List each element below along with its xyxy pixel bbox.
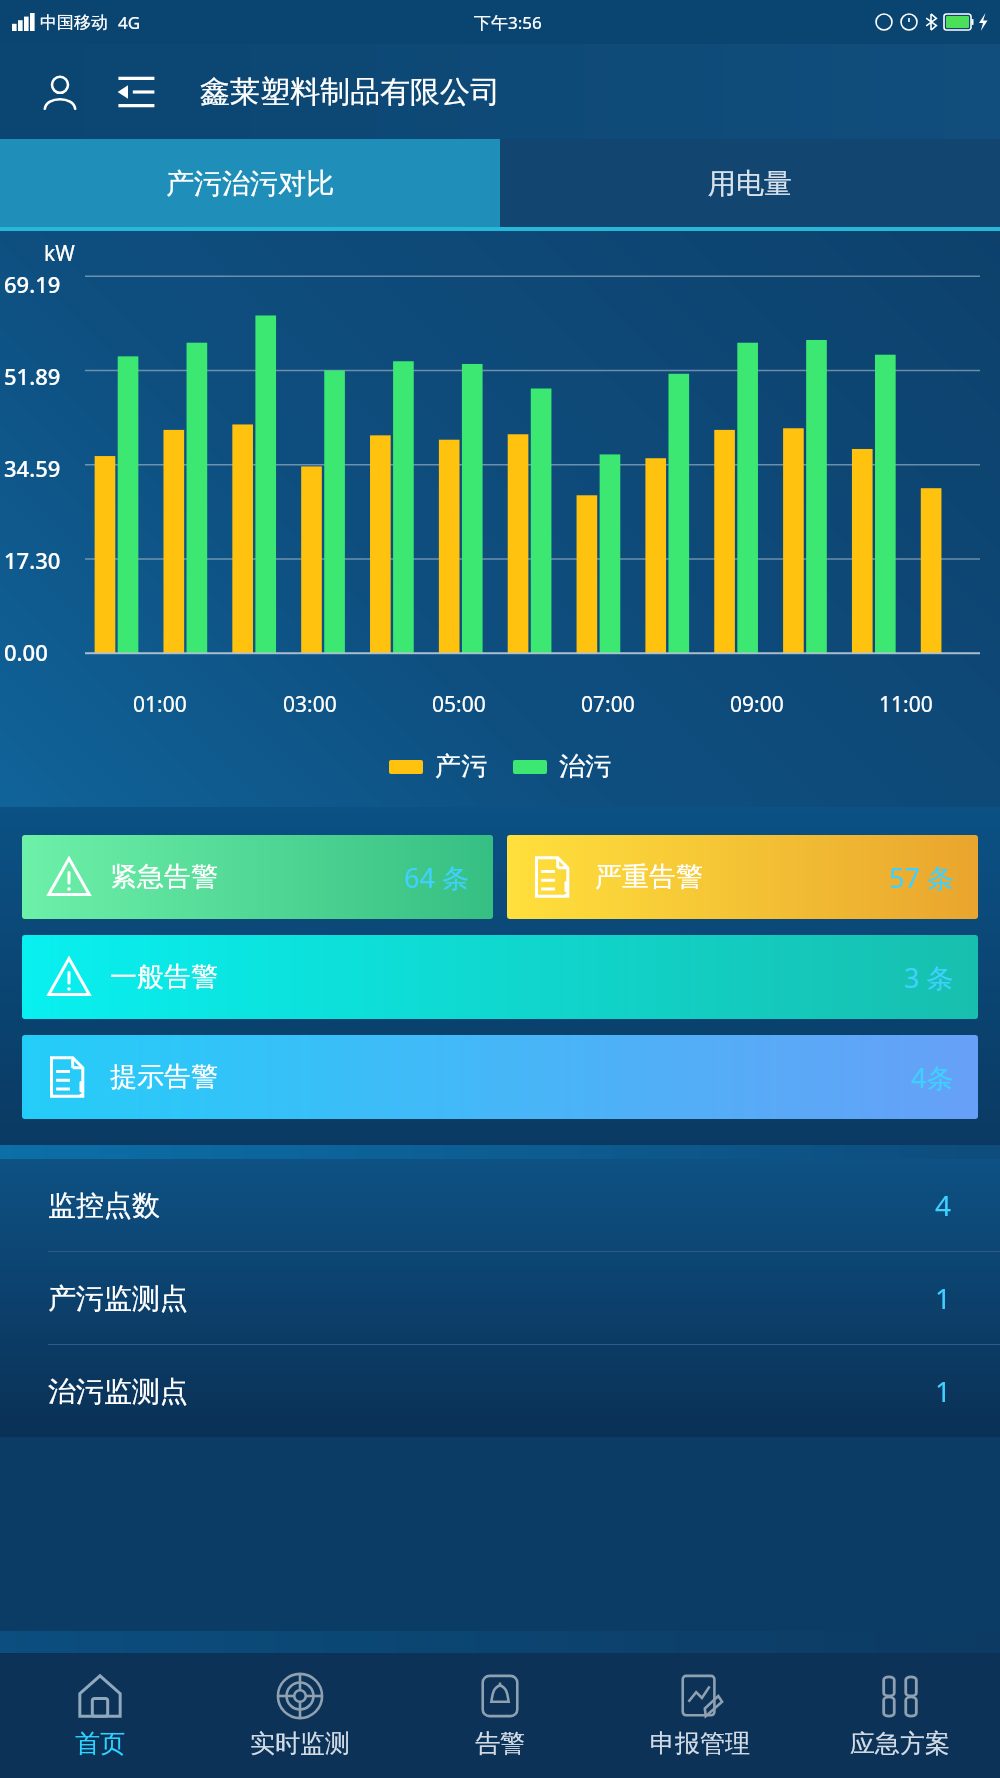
button[interactable]: 一般告警 [22,935,978,1019]
staticText: 64 条 [404,859,469,896]
staticText: 4条 [911,1059,954,1096]
staticText: 鑫莱塑料制品有限公司 [200,73,500,111]
button[interactable]: 治污监测点 [0,1345,1000,1437]
staticText: 17.30 [4,545,61,575]
button[interactable]: 提示告警 [22,1035,978,1119]
button[interactable]: 首页 [0,1653,200,1778]
button[interactable]: Menu [112,68,160,116]
staticText: 一般告警 [110,960,218,994]
button[interactable]: 告警 [400,1653,600,1778]
staticText: 提示告警 [110,1060,218,1094]
staticText: 34.59 [4,453,61,483]
button[interactable]: 实时监测 [200,1653,400,1778]
staticText: 03:00 [283,690,337,719]
staticText: 11:00 [879,690,933,719]
staticText: 中国移动 [40,12,108,33]
button[interactable]: Profile [36,68,84,116]
staticText: 应急方案 [850,1728,950,1759]
staticText: 实时监测 [250,1728,350,1759]
button[interactable]: 产污监测点 [0,1252,1000,1344]
staticText: 57 条 [889,859,954,896]
staticText: 监控点数 [48,1188,160,1223]
staticText: 用电量 [708,166,792,201]
staticText: 下午3:56 [474,11,542,34]
staticText: 告警 [475,1728,525,1759]
button[interactable]: 应急方案 [800,1653,1000,1778]
staticText: kW [44,239,75,268]
staticText: 09:00 [730,690,784,719]
staticText: 首页 [75,1728,125,1759]
staticText: 治污 [559,750,611,783]
staticText: 05:00 [432,690,486,719]
button[interactable]: 产污治污对比 [0,139,500,227]
staticText: 1 [935,1372,952,1410]
staticText: 69.19 [4,269,61,299]
staticText: 51.89 [4,361,61,391]
staticText: 产污 [435,750,487,783]
button[interactable]: 监控点数 [0,1159,1000,1251]
button[interactable]: 用电量 [500,139,1000,227]
staticText: 申报管理 [650,1728,750,1759]
staticText: 4 [935,1186,952,1224]
button[interactable]: 严重告警 [507,835,978,919]
staticText: 4G [118,11,141,34]
staticText: 01:00 [133,690,187,719]
staticText: 治污监测点 [48,1374,188,1409]
staticText: 07:00 [581,690,635,719]
staticText: 产污治污对比 [166,166,334,201]
staticText: 严重告警 [595,860,703,894]
staticText: 产污监测点 [48,1281,188,1316]
staticText: 紧急告警 [110,860,218,894]
staticText: 0.00 [4,637,48,667]
button[interactable]: 紧急告警 [22,835,493,919]
staticText: 1 [935,1279,952,1317]
button[interactable]: 申报管理 [600,1653,800,1778]
staticText: 3 条 [904,959,954,996]
